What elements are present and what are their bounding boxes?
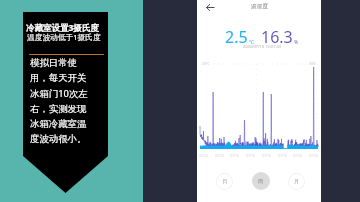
staticText: 07/16 (278, 153, 288, 158)
staticText: 日 (222, 178, 228, 185)
staticText: 冷藏室设置3摄氏度 (26, 22, 99, 34)
staticText: ℃ (249, 39, 254, 46)
staticText: 月 (294, 178, 300, 185)
staticText: 07/16 (246, 153, 256, 158)
staticText: 2020/07/16 12:07:33 (200, 44, 324, 49)
staticText: 07/16 (293, 153, 303, 158)
staticText: 28℃ (202, 61, 210, 66)
button[interactable]: 周 (252, 172, 270, 190)
button[interactable]: 日 (216, 173, 233, 190)
button[interactable]: 月 (288, 173, 305, 190)
staticText: 周 (258, 178, 264, 185)
staticText: 模拟日常使用，每天开关冰箱门10次左右，实测发现冰箱冷藏室温度波动很小。 (30, 57, 90, 145)
staticText: 07/16 (262, 153, 272, 158)
staticText: 温度波动低于1摄氏度 (27, 32, 101, 43)
staticText: 16.3 (261, 26, 293, 48)
staticText: 07/16 (215, 153, 225, 158)
staticText: 07/16 (309, 153, 319, 158)
staticText: 98% (309, 61, 317, 66)
button[interactable]: Back (202, 0, 219, 16)
staticText: 温湿度 (251, 3, 268, 10)
staticText: 2.5 (225, 26, 248, 48)
staticText: 07/16 (199, 153, 209, 158)
staticText: % (294, 39, 299, 46)
staticText: 07/16 (230, 153, 240, 158)
